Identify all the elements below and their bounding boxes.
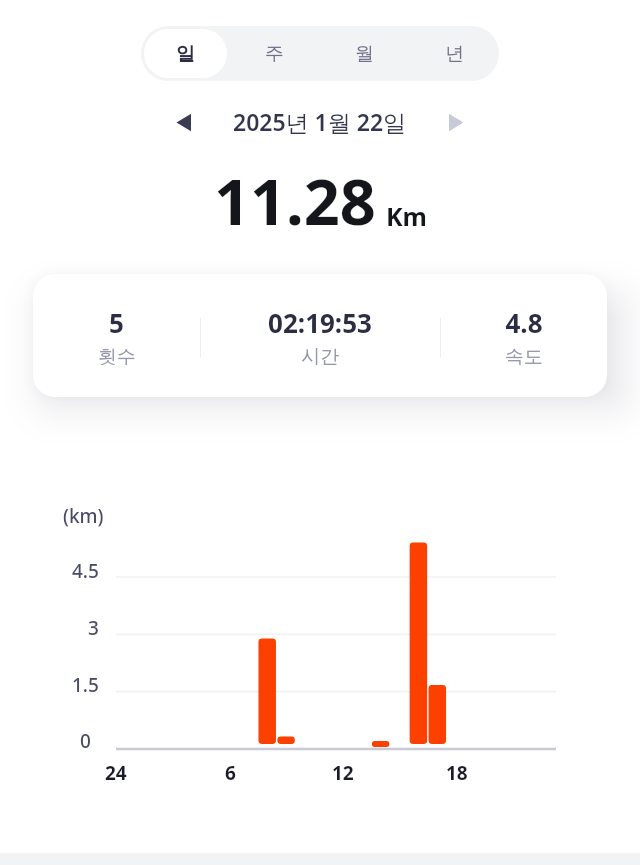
staticText: (km) <box>63 503 104 529</box>
staticText: 6 <box>225 760 236 786</box>
staticText: 시간 <box>301 345 339 369</box>
button[interactable]: 년 <box>412 29 496 78</box>
staticText: 24 <box>105 760 127 786</box>
button[interactable]: 주 <box>233 29 316 78</box>
staticText: 월 <box>355 42 374 66</box>
staticText: 3 <box>88 615 99 641</box>
staticText: 12 <box>332 760 354 786</box>
button[interactable]: 02:19:53 <box>200 274 440 397</box>
staticText: 2025년 1월 22일 <box>233 106 407 137</box>
staticText: 주 <box>265 42 284 66</box>
staticText: 1.5 <box>72 672 99 698</box>
staticText: 횟수 <box>98 345 136 369</box>
staticText: 11.28 <box>214 158 376 244</box>
button[interactable]: Previous day <box>163 101 205 143</box>
staticText: 년 <box>445 42 464 66</box>
staticText: Km <box>386 199 427 233</box>
button[interactable]: Next day <box>434 101 476 143</box>
staticText: 일 <box>176 42 195 66</box>
staticText: 0 <box>80 728 91 754</box>
staticText: 02:19:53 <box>268 305 372 340</box>
staticText: 4.8 <box>505 305 543 340</box>
button[interactable]: 5 <box>33 274 200 397</box>
staticText: 속도 <box>505 345 543 369</box>
button[interactable]: 월 <box>322 29 406 78</box>
staticText: 4.5 <box>72 558 99 584</box>
staticText: 18 <box>446 760 468 786</box>
button[interactable]: 4.8 <box>440 274 607 397</box>
button[interactable]: 일 <box>144 29 227 78</box>
staticText: 5 <box>109 305 124 340</box>
